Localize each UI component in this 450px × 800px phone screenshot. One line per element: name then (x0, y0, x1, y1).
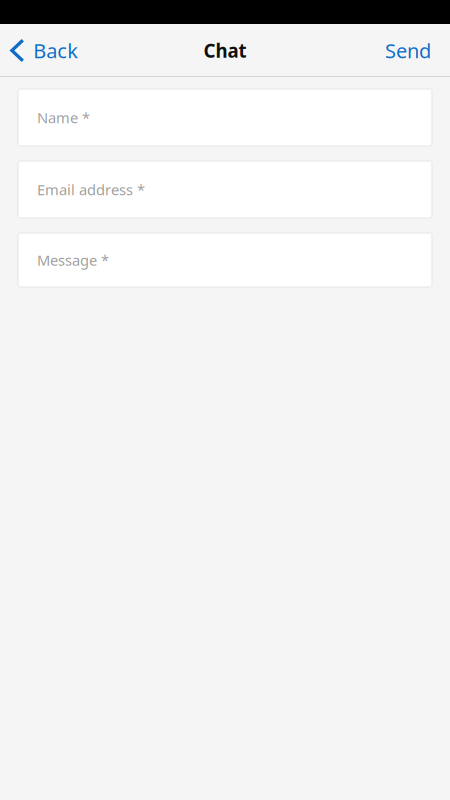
staticText: Message * (37, 250, 109, 270)
staticText: Name * (37, 108, 90, 127)
button[interactable]: Email address * (18, 161, 432, 218)
staticText: Back (33, 37, 78, 64)
button[interactable]: Send (373, 24, 450, 76)
button[interactable]: Message * (18, 233, 432, 287)
button[interactable]: Name * (18, 89, 432, 146)
staticText: Send (385, 37, 431, 64)
staticText: Chat (203, 38, 246, 63)
staticText: Email address * (37, 180, 145, 199)
button[interactable]: Back (0, 24, 90, 76)
